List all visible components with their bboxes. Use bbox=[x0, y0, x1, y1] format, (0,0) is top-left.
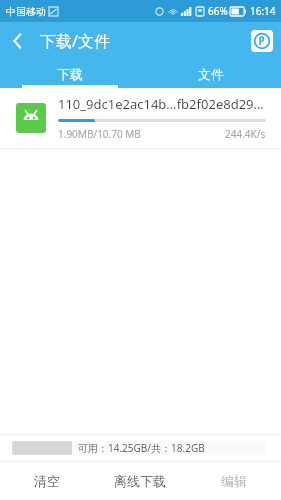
button[interactable]: 编辑 bbox=[187, 462, 281, 500]
button[interactable]: App logo bbox=[251, 30, 273, 52]
staticText: 中国移动 bbox=[6, 5, 46, 18]
button[interactable]: Back bbox=[0, 22, 34, 60]
button[interactable]: 下载 bbox=[0, 60, 140, 88]
staticText: 下载 bbox=[57, 66, 83, 82]
staticText: 1.90MB/10.70 MB bbox=[58, 127, 141, 141]
staticText: 离线下载 bbox=[114, 473, 166, 489]
staticText: 244.4K/s bbox=[225, 127, 266, 141]
button[interactable]: 离线下载 bbox=[93, 462, 187, 500]
button[interactable]: 110_9dc1e2ac14b…fb2f02e8d29.apk bbox=[0, 88, 281, 149]
staticText: 16:14 bbox=[250, 4, 276, 18]
staticText: 66% bbox=[208, 4, 228, 18]
staticText: 110_9dc1e2ac14b…fb2f02e8d29.apk bbox=[58, 95, 266, 113]
button[interactable]: 清空 bbox=[0, 462, 93, 500]
button[interactable]: 文件 bbox=[140, 60, 281, 88]
staticText: 编辑 bbox=[221, 473, 247, 489]
staticText: 可用：14.25GB/共：18.2GB bbox=[78, 441, 205, 455]
staticText: 下载/文件 bbox=[40, 30, 110, 52]
staticText: 清空 bbox=[34, 473, 60, 489]
staticText: 文件 bbox=[198, 66, 224, 82]
